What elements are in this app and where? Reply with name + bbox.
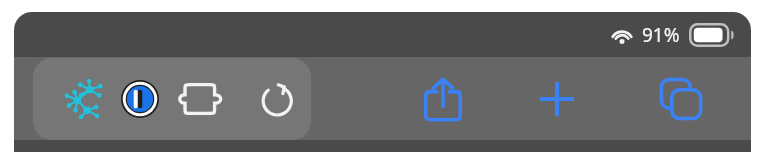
button[interactable]: Show tabs (646, 57, 716, 140)
button[interactable]: Network graph extension (54, 58, 116, 140)
button[interactable]: 1Password (112, 58, 168, 140)
button[interactable]: New tab (522, 57, 592, 140)
button[interactable]: Reload (249, 58, 307, 140)
staticText: 91% (642, 22, 680, 48)
button[interactable]: Share (408, 57, 478, 140)
button[interactable]: Extensions (171, 58, 231, 140)
